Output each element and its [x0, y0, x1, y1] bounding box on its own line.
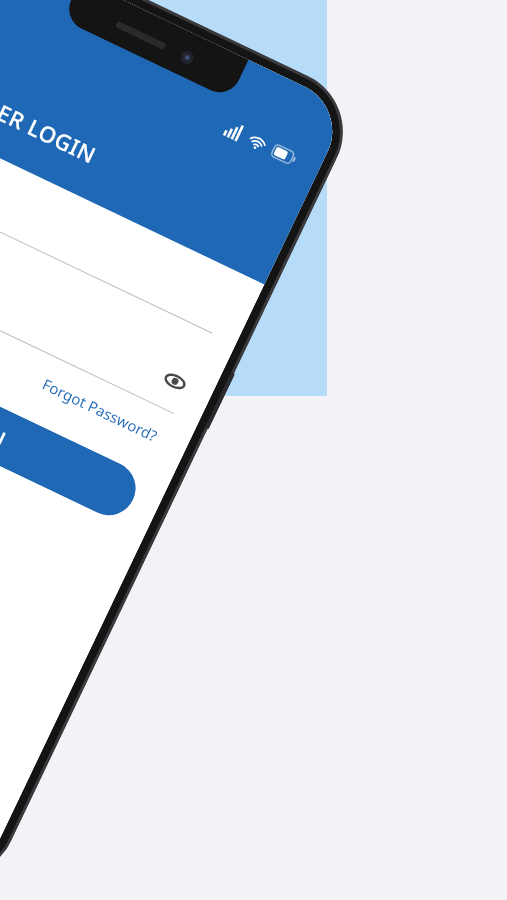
button[interactable]: Show password	[158, 364, 192, 399]
staticText: USER LOGIN	[0, 84, 102, 170]
button[interactable]: Forgot Password?	[34, 369, 166, 451]
staticText: Forgot Password?	[39, 374, 161, 446]
button[interactable]: SIGN IN	[0, 322, 145, 524]
staticText: SIGN IN	[0, 397, 10, 450]
